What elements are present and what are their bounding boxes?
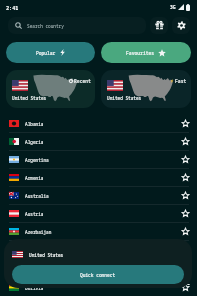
button[interactable]: Armenia xyxy=(0,169,197,186)
button[interactable]: Recent xyxy=(6,70,95,108)
staticText: United States xyxy=(29,252,64,258)
staticText: Belgium xyxy=(25,283,44,289)
button[interactable]: Bolivia xyxy=(0,282,197,293)
button[interactable]: Popular xyxy=(6,42,95,63)
button[interactable]: Argentina xyxy=(0,151,197,168)
staticText: Austria xyxy=(25,211,44,217)
staticText: Fast xyxy=(175,78,187,84)
button[interactable]: Australia xyxy=(0,187,197,204)
staticText: Australia xyxy=(25,193,49,199)
staticText: Armenia xyxy=(25,175,44,181)
staticText: 2:41 xyxy=(6,4,19,11)
staticText: Favourites xyxy=(126,50,155,56)
button[interactable]: Austria xyxy=(0,205,197,222)
button[interactable]: Quick connect xyxy=(12,265,184,284)
staticText: Albania xyxy=(25,121,44,127)
staticText: Recent xyxy=(74,78,91,84)
staticText: Bolivia xyxy=(25,285,44,291)
button[interactable]: Bahamas xyxy=(0,241,197,258)
staticText: 3G xyxy=(170,4,176,10)
button[interactable]: Albania xyxy=(0,115,197,132)
button[interactable]: Bangladesh xyxy=(0,259,197,276)
staticText: Quick connect xyxy=(80,272,116,278)
button[interactable]: Belgium xyxy=(0,277,197,294)
staticText: United States xyxy=(12,95,47,101)
button[interactable]: Algeria xyxy=(0,133,197,150)
button[interactable]: Azerbaijan xyxy=(0,223,197,240)
staticText: Azerbaijan xyxy=(25,229,52,235)
button[interactable]: Settings xyxy=(172,17,190,34)
button[interactable]: Search country xyxy=(8,17,146,34)
staticText: Argentina xyxy=(25,157,49,163)
button[interactable]: Fast xyxy=(101,70,191,108)
staticText: Search country xyxy=(27,23,64,29)
button[interactable]: Gifts xyxy=(150,17,168,34)
button[interactable]: Favourites xyxy=(101,42,191,63)
staticText: Popular xyxy=(36,50,56,56)
staticText: Algeria xyxy=(25,139,44,145)
staticText: United States xyxy=(107,95,142,101)
